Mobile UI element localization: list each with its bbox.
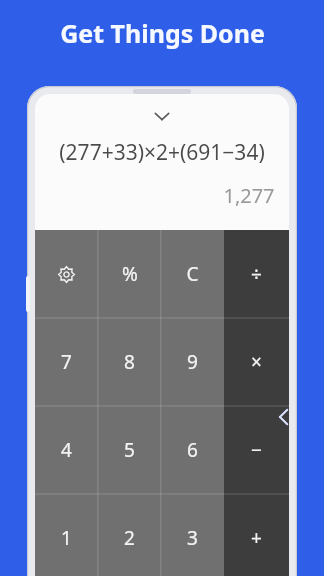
- staticText: 6: [187, 437, 198, 463]
- button[interactable]: 4: [35, 406, 98, 494]
- staticText: +: [251, 525, 262, 551]
- staticText: 7: [61, 349, 72, 375]
- staticText: %: [122, 261, 138, 287]
- button[interactable]: %: [98, 230, 161, 318]
- button[interactable]: Settings: [35, 230, 98, 318]
- staticText: 9: [187, 349, 198, 375]
- staticText: 8: [124, 349, 135, 375]
- button[interactable]: Previous: [274, 404, 292, 430]
- staticText: C: [186, 261, 199, 287]
- button[interactable]: 2: [98, 494, 161, 576]
- button[interactable]: 7: [35, 318, 98, 406]
- staticText: 5: [124, 437, 135, 463]
- staticText: Get Things Done: [60, 16, 265, 50]
- button[interactable]: ÷: [224, 230, 289, 318]
- staticText: ÷: [251, 261, 262, 287]
- button[interactable]: 1: [35, 494, 98, 576]
- button[interactable]: 3: [161, 494, 224, 576]
- button[interactable]: Collapse history: [35, 94, 289, 130]
- button[interactable]: −: [224, 406, 289, 494]
- button[interactable]: 8: [98, 318, 161, 406]
- staticText: 3: [187, 525, 198, 551]
- staticText: −: [251, 437, 262, 463]
- staticText: 1: [61, 525, 72, 551]
- staticText: 2: [124, 525, 135, 551]
- staticText: 4: [61, 437, 72, 463]
- button[interactable]: ×: [224, 318, 289, 406]
- button[interactable]: 9: [161, 318, 224, 406]
- staticText: ×: [251, 349, 262, 375]
- button[interactable]: C: [161, 230, 224, 318]
- button[interactable]: 5: [98, 406, 161, 494]
- button[interactable]: +: [224, 494, 289, 576]
- staticText: (277+33)×2+(691−34): [59, 138, 265, 167]
- button[interactable]: 6: [161, 406, 224, 494]
- staticText: 1,277: [223, 182, 275, 209]
